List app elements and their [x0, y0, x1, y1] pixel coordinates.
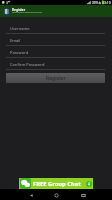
button[interactable]: Home	[47, 190, 65, 200]
button[interactable]: Username	[6, 22, 105, 34]
button[interactable]: Recent apps	[74, 190, 92, 200]
button[interactable]: App icon	[3, 8, 10, 15]
staticText: 3:10	[104, 0, 111, 5]
button[interactable]: Email	[6, 34, 105, 46]
staticText: Confirm Password	[10, 62, 45, 67]
staticText: Email	[10, 38, 21, 43]
staticText: http://www.4india.org/forum	[12, 11, 42, 14]
button[interactable]: Register	[6, 73, 105, 83]
staticText: Username	[10, 26, 30, 31]
button[interactable]: Back	[22, 190, 40, 200]
button[interactable]: Confirm Password	[6, 58, 105, 70]
staticText: FREE Group Chat	[33, 180, 81, 188]
button[interactable]: FREE Group Chat	[19, 178, 93, 189]
staticText: 39%	[92, 1, 99, 5]
staticText: Register	[46, 75, 66, 82]
staticText: Register	[12, 7, 26, 11]
staticText: Password	[10, 50, 29, 55]
button[interactable]: Password	[6, 46, 105, 58]
